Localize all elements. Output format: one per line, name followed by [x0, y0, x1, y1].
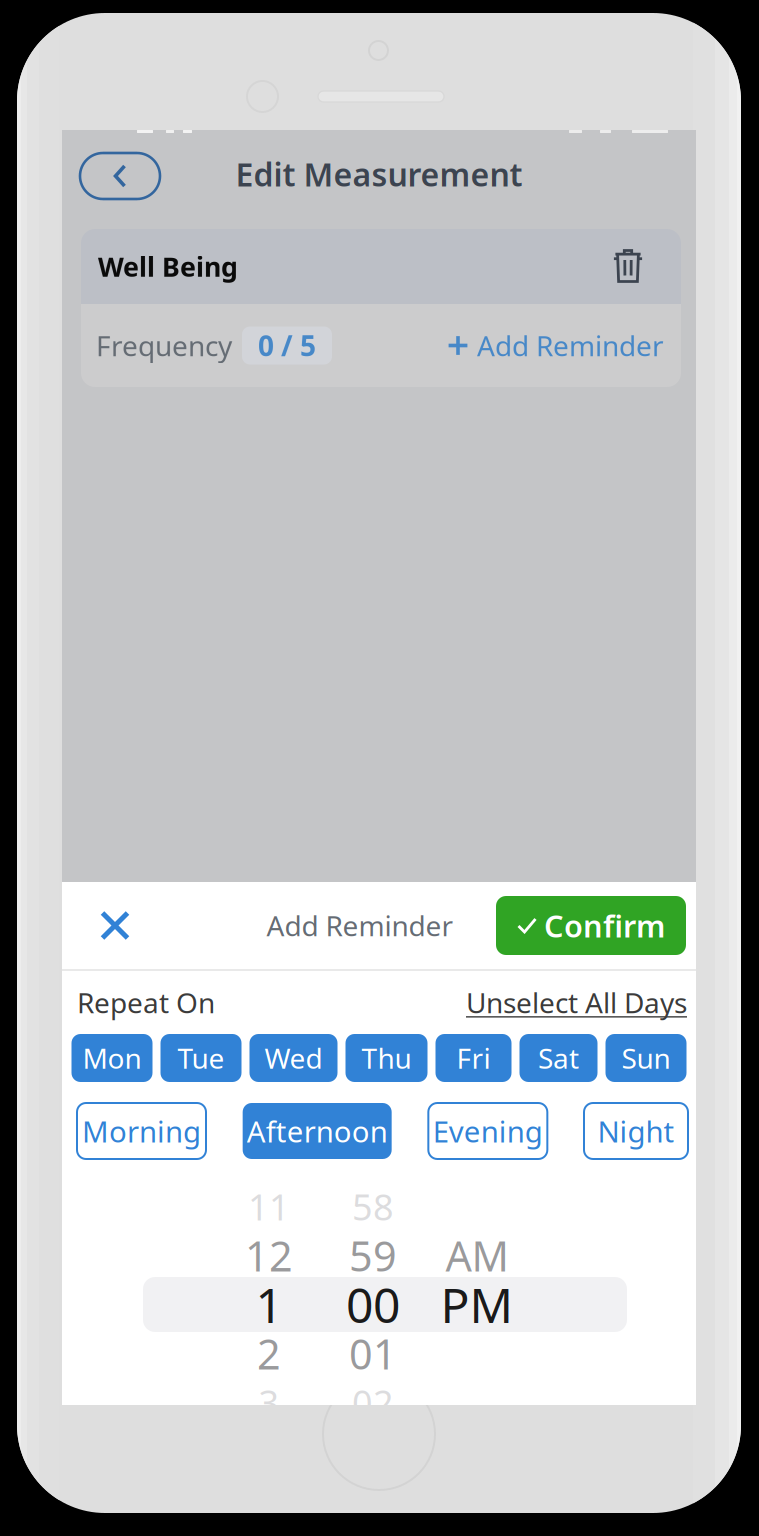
staticText: Evening — [433, 1111, 543, 1150]
button[interactable]: Close — [82, 892, 148, 958]
button[interactable]: Delete — [602, 240, 654, 292]
button[interactable]: Night — [584, 1103, 688, 1159]
staticText: 01 — [349, 1326, 397, 1381]
button[interactable]: Wed — [249, 1034, 337, 1082]
button[interactable]: Add Reminder — [447, 327, 664, 364]
staticText: PM — [440, 1273, 513, 1336]
staticText: Morning — [82, 1111, 201, 1150]
staticText: Well Being — [98, 249, 238, 284]
button[interactable]: Evening — [428, 1103, 547, 1159]
button[interactable]: Mon — [71, 1034, 152, 1082]
staticText: 2 — [257, 1326, 281, 1381]
button[interactable]: Morning — [77, 1103, 206, 1159]
staticText: 02 — [352, 1379, 394, 1426]
staticText: Repeat On — [77, 984, 215, 1021]
staticText: Wed — [264, 1039, 322, 1077]
staticText: 1 — [255, 1273, 282, 1336]
staticText: Afternoon — [247, 1111, 388, 1150]
staticText: 12 — [245, 1228, 293, 1283]
staticText: 0 / 5 — [258, 327, 316, 364]
staticText: Sun — [621, 1039, 670, 1077]
staticText: 3 — [258, 1379, 279, 1426]
button[interactable]: Confirm — [496, 896, 686, 955]
staticText: Sat — [538, 1039, 579, 1077]
staticText: Add Reminder — [477, 327, 664, 364]
staticText: Tue — [177, 1039, 224, 1077]
staticText: 59 — [349, 1228, 397, 1283]
staticText: Thu — [361, 1039, 411, 1077]
button[interactable]: Afternoon — [243, 1103, 392, 1159]
staticText — [472, 1379, 481, 1426]
staticText: Unselect All Days — [466, 984, 687, 1021]
button[interactable]: Fri — [435, 1034, 511, 1082]
staticText: 11 — [248, 1183, 290, 1230]
button[interactable]: Sun — [605, 1034, 686, 1082]
staticText: Night — [597, 1111, 674, 1150]
staticText: Fri — [456, 1039, 490, 1077]
button[interactable]: Thu — [345, 1034, 427, 1082]
button[interactable]: Unselect All Days — [466, 984, 687, 1021]
button[interactable]: Sat — [519, 1034, 597, 1082]
staticText: Edit Measurement — [235, 153, 522, 195]
staticText: Add Reminder — [266, 907, 453, 944]
button[interactable]: Back — [80, 153, 160, 199]
staticText: Frequency — [96, 327, 232, 364]
staticText: Mon — [82, 1039, 141, 1077]
staticText: AM — [445, 1228, 508, 1283]
staticText: Confirm — [544, 905, 665, 946]
staticText: 58 — [352, 1183, 394, 1230]
button[interactable]: Tue — [160, 1034, 241, 1082]
staticText — [471, 1326, 482, 1381]
staticText: 00 — [346, 1273, 400, 1336]
